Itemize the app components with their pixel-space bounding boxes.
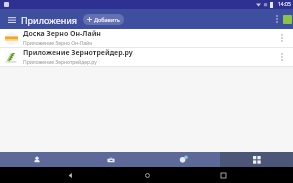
button[interactable]: Доска Зерно Он-Лайн [0, 29, 293, 47]
button[interactable]: Сообщения [147, 152, 220, 167]
button[interactable]: Обзор [217, 169, 229, 181]
button[interactable]: Приложения [220, 152, 293, 167]
button[interactable]: Домой [141, 169, 153, 181]
staticText: Приложение Зерно Он-Лайн [23, 40, 93, 47]
button[interactable]: Опции [275, 50, 289, 64]
staticText: Приложение Зернотрейдер.ру [23, 48, 133, 58]
button[interactable]: Добавить [83, 14, 124, 25]
staticText: Приложение Зернотрейдер.ру [23, 59, 97, 66]
button[interactable]: Объявления [74, 152, 147, 167]
staticText: Добавить [94, 16, 120, 23]
button[interactable]: Меню [5, 13, 18, 26]
button[interactable]: Профиль [283, 15, 292, 24]
button[interactable]: Назад [64, 169, 76, 181]
button[interactable]: Ещё [271, 13, 283, 25]
button[interactable]: Профиль [0, 152, 74, 167]
staticText: Приложения [21, 14, 78, 26]
staticText: Доска Зерно Он-Лайн [23, 29, 101, 39]
button[interactable]: Опции [275, 31, 289, 45]
staticText: 14:05 [278, 1, 291, 8]
button[interactable]: Приложение Зернотрейдер.ру [0, 48, 293, 66]
